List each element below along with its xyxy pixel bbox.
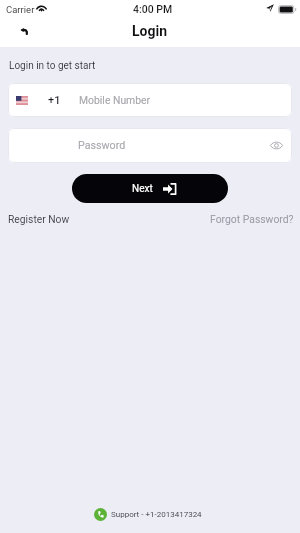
staticText: Login in to get start [9, 60, 96, 72]
staticText: 4:00 PM [133, 3, 173, 15]
button[interactable]: Show password [270, 139, 283, 152]
staticText: Mobile Number [79, 94, 151, 106]
staticText: Support - +1-2013417324 [111, 510, 202, 519]
staticText: +1 [48, 94, 61, 107]
button[interactable]: Next [72, 174, 228, 203]
button[interactable]: Support - +1-2013417324 [94, 508, 202, 521]
staticText: Carrier [6, 4, 35, 15]
button[interactable]: Password [8, 128, 292, 163]
staticText: Login [132, 23, 168, 39]
button[interactable]: Forgot Password? [210, 213, 294, 225]
button[interactable]: Register Now [8, 213, 70, 225]
button[interactable]: +1 [8, 83, 292, 117]
button[interactable]: Back [20, 27, 29, 36]
staticText: Next [132, 183, 153, 195]
staticText: Password [78, 139, 126, 152]
